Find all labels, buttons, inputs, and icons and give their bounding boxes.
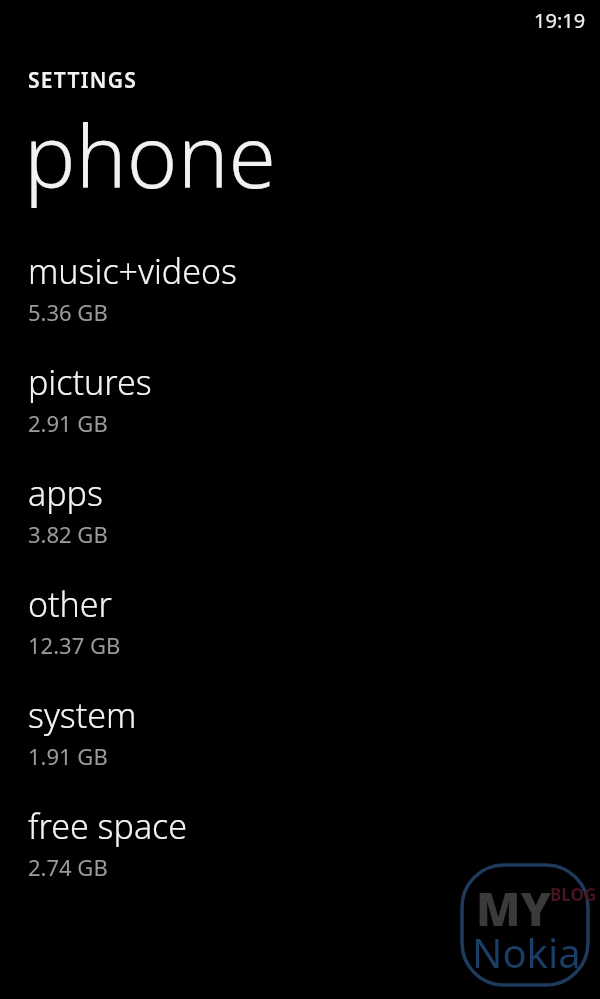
staticText: BLOG <box>550 883 597 906</box>
button[interactable]: music+videos <box>0 248 600 343</box>
staticText: apps <box>28 470 103 516</box>
staticText: 2.74 GB <box>28 852 108 882</box>
button[interactable]: system <box>0 692 600 787</box>
staticText: 19:19 <box>534 7 586 34</box>
staticText: MY <box>476 877 552 940</box>
staticText: 1.91 GB <box>28 741 108 771</box>
staticText: 3.82 GB <box>28 519 108 549</box>
staticText: other <box>28 581 113 627</box>
staticText: phone <box>24 96 277 213</box>
button[interactable]: apps <box>0 470 600 565</box>
staticText: 12.37 GB <box>28 630 121 660</box>
button[interactable]: other <box>0 581 600 676</box>
button[interactable]: pictures <box>0 359 600 454</box>
staticText: SETTINGS <box>28 66 138 95</box>
staticText: pictures <box>28 359 152 405</box>
staticText: Nokia <box>472 925 581 979</box>
staticText: 5.36 GB <box>28 297 108 327</box>
staticText: 2.91 GB <box>28 408 108 438</box>
staticText: music+videos <box>28 248 237 294</box>
staticText: free space <box>28 803 188 849</box>
staticText: system <box>28 692 137 738</box>
button[interactable]: free space <box>0 803 600 898</box>
